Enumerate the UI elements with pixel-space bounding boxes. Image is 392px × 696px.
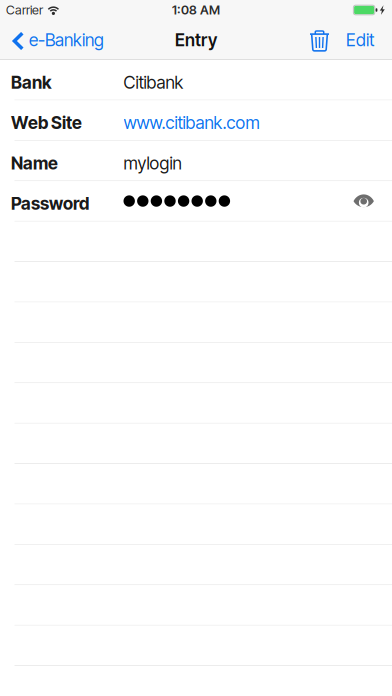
staticText: mylogin [123, 153, 181, 174]
button[interactable]: Delete [303, 20, 336, 60]
button[interactable]: e-Banking [0, 20, 110, 60]
staticText: e-Banking [29, 29, 104, 50]
staticText: 1:08 AM [172, 2, 220, 18]
button[interactable]: Edit [340, 20, 392, 60]
staticText: Bank [11, 72, 52, 93]
staticText: Carrier [6, 2, 43, 18]
button[interactable]: Show password [347, 186, 380, 215]
button[interactable]: Name [0, 141, 392, 181]
staticText: Edit [346, 29, 374, 50]
staticText: Citibank [123, 72, 183, 93]
button[interactable]: Password [0, 181, 392, 222]
staticText: Name [11, 153, 58, 174]
staticText: Entry [175, 29, 217, 50]
staticText: www.citibank.com [123, 112, 259, 133]
staticText: Password [11, 193, 89, 214]
button[interactable]: Bank [0, 60, 392, 100]
staticText: Web Site [11, 112, 82, 133]
button[interactable]: Web Site [0, 100, 392, 141]
